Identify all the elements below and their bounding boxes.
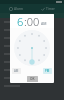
button[interactable]: AM (41, 21, 47, 26)
button[interactable]: Timer (32, 4, 64, 13)
button[interactable] (0, 42, 64, 50)
button[interactable] (0, 26, 64, 34)
button[interactable]: PM (45, 69, 50, 73)
staticText: Alarm (14, 7, 24, 11)
button[interactable] (0, 58, 64, 66)
button[interactable]: AM (14, 69, 19, 73)
staticText: AM (14, 69, 19, 73)
button[interactable] (0, 18, 64, 26)
button[interactable] (0, 34, 64, 42)
staticText: Timer (46, 7, 55, 11)
button[interactable] (0, 74, 64, 82)
button[interactable]: OK (30, 77, 35, 81)
button[interactable]: Alarm (0, 4, 32, 13)
button[interactable]: Clock face, 6 o'clock (14, 30, 50, 66)
staticText: OK (30, 77, 35, 81)
button[interactable] (0, 82, 64, 90)
button[interactable] (0, 66, 64, 74)
button[interactable]: :00 (24, 14, 40, 28)
staticText: PM (45, 69, 50, 73)
button[interactable] (0, 50, 64, 58)
button[interactable]: 6 (17, 14, 24, 28)
